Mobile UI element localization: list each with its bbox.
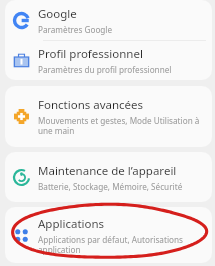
button[interactable]: Google — [5, 0, 212, 40]
button[interactable]: Fonctions avancées — [5, 86, 212, 147]
other: Fonctions avancées — [13, 108, 30, 125]
staticText: Applications par défaut, Autorisations a… — [38, 234, 204, 255]
staticText: Paramètres du profil professionnel — [38, 64, 172, 75]
other: Maintenance de l’appareil — [13, 169, 30, 186]
button[interactable]: Applications — [5, 207, 212, 263]
staticText: Google — [38, 6, 77, 22]
staticText: Batterie, Stockage, Mémoire, Sécurité — [38, 181, 183, 192]
other: Google — [13, 12, 30, 29]
staticText: Paramètres Google — [38, 24, 113, 35]
staticText: Fonctions avancées — [38, 97, 144, 113]
staticText: Maintenance de l’appareil — [38, 163, 177, 179]
other: Profil professionnel — [13, 52, 30, 69]
staticText: Mouvements et gestes, Mode Utilisation à… — [38, 115, 204, 136]
staticText: Profil professionnel — [38, 46, 143, 62]
other: Applications — [13, 227, 30, 244]
staticText: Applications — [38, 216, 105, 232]
button[interactable]: Profil professionnel — [5, 41, 212, 80]
button[interactable]: Maintenance de l’appareil — [5, 152, 212, 202]
